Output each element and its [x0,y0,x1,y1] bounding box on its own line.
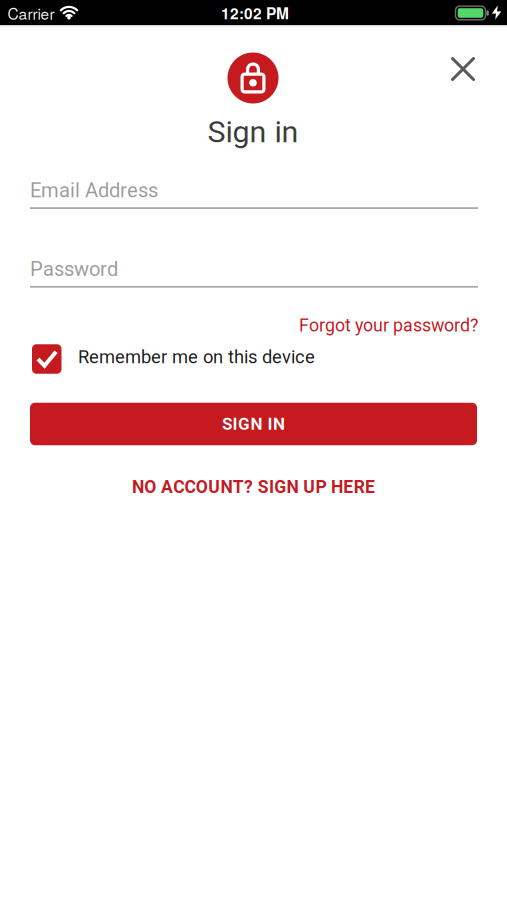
button[interactable]: Forgot your password? [299,315,478,336]
button[interactable]: Email Address [30,178,478,208]
staticText: Sign in [207,114,298,150]
button[interactable]: Close [442,48,483,89]
staticText: SIGN IN [222,414,285,434]
staticText: NO ACCOUNT? SIGN UP HERE [132,477,375,497]
staticText: Email Address [30,178,158,202]
staticText: Carrier [7,2,54,24]
button[interactable]: NO ACCOUNT? SIGN UP HERE [132,477,375,497]
button[interactable]: SIGN IN [30,403,477,445]
button[interactable]: Remember me on this device [32,344,315,374]
staticText: Password [30,257,118,281]
staticText: 12:02 PM [221,2,289,24]
staticText: Forgot your password? [299,315,478,336]
staticText: Remember me on this device [78,346,315,368]
button[interactable]: Password [30,257,478,287]
